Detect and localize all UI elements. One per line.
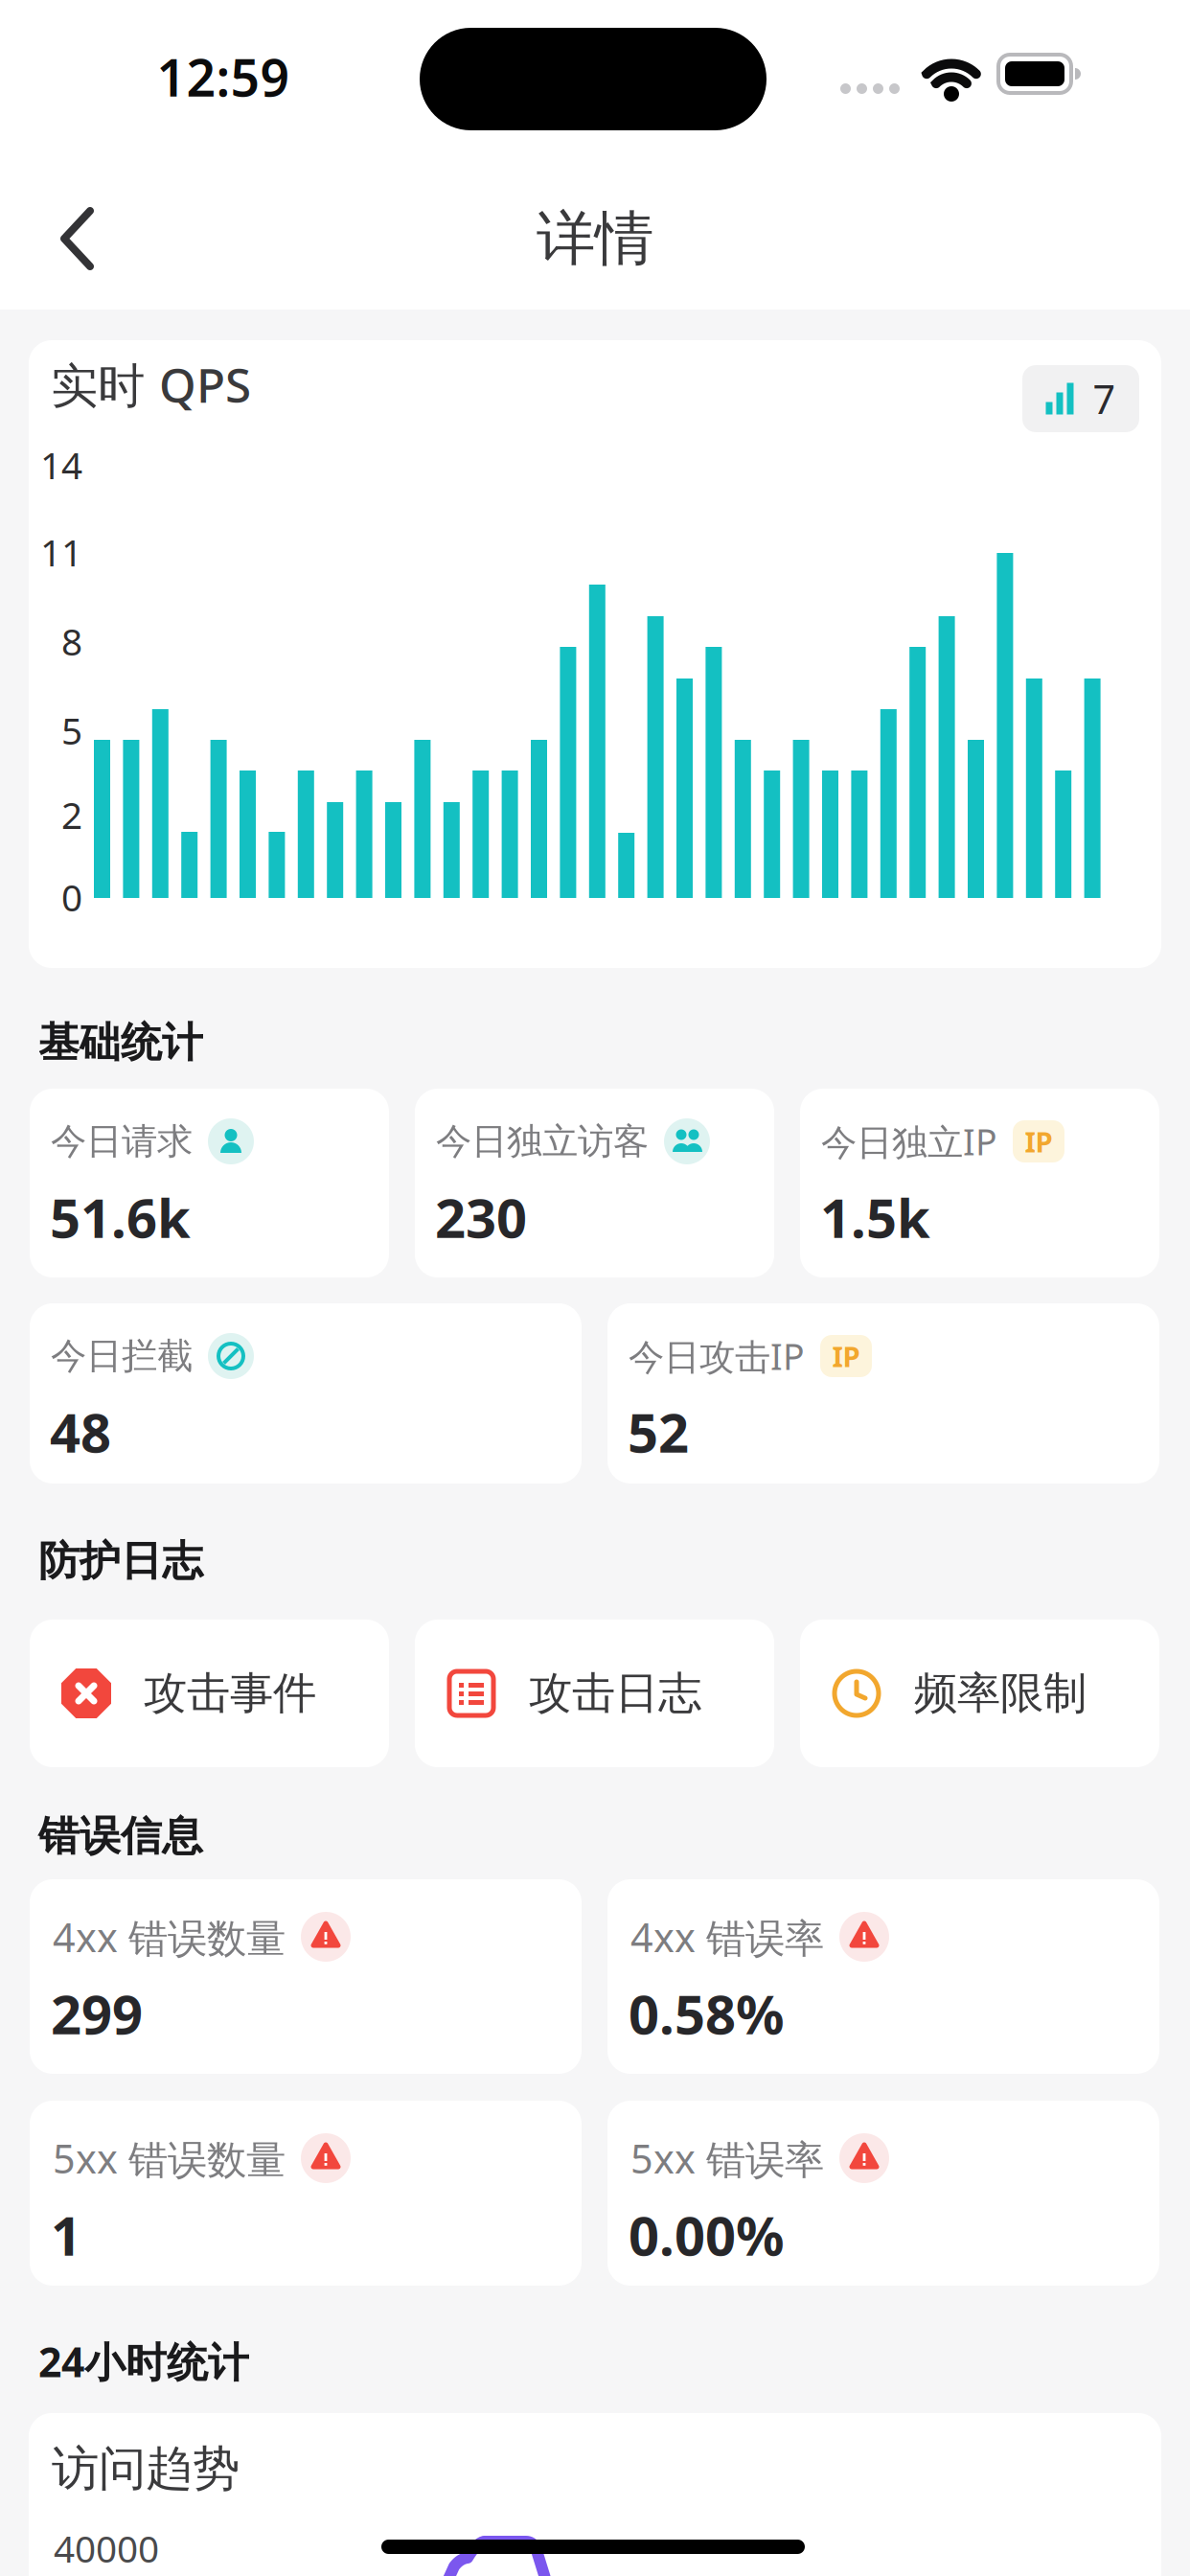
staticText: 51.6k [50,1181,191,1253]
staticText: 防护日志 [38,1536,203,1586]
staticText: 1.5k [820,1181,930,1253]
staticText: 0 [61,872,82,922]
staticText: 8 [61,616,82,666]
staticText: 0.58% [629,1978,785,2049]
staticText: 今日独立访客 [436,1119,649,1163]
staticText: 7 [1093,372,1116,425]
staticText: 2 [61,790,82,839]
staticText: 12:59 [157,43,290,111]
staticText: 今日攻击IP [629,1332,805,1380]
staticText: 攻击事件 [144,1667,316,1720]
staticText: 0.00% [629,2199,785,2270]
button[interactable]: 攻击事件 [30,1620,389,1767]
staticText: 实时 QPS [51,353,251,416]
staticText: 访问趋势 [52,2440,240,2498]
button[interactable]: 图表区间 [1022,365,1139,432]
staticText: IP [832,1337,860,1375]
staticText: 299 [51,1978,143,2049]
staticText: 4xx 错误数量 [53,1910,286,1963]
staticText: 今日独立IP [821,1118,997,1165]
staticText: 24小时统计 [38,2334,249,2389]
staticText: 52 [628,1396,689,1467]
staticText: 频率限制 [914,1667,1087,1720]
staticText: 5xx 错误率 [630,2132,824,2185]
staticText: 11 [40,527,82,577]
staticText: 今日拦截 [51,1334,193,1378]
staticText: 攻击日志 [529,1667,701,1720]
button[interactable]: 频率限制 [800,1620,1159,1767]
staticText: 14 [40,440,82,489]
staticText: 1 [51,2199,81,2270]
staticText: 详情 [537,202,653,275]
staticText: 今日请求 [51,1119,193,1163]
staticText: 基础统计 [38,1018,203,1068]
staticText: 230 [435,1181,527,1253]
button[interactable]: 攻击日志 [415,1620,774,1767]
staticText: IP [1025,1123,1053,1160]
staticText: 5xx 错误数量 [53,2132,286,2185]
button[interactable]: 返回 [61,207,100,270]
staticText: 40000 [54,2524,159,2573]
staticText: 错误信息 [38,1811,203,1861]
staticText: 5 [61,706,82,755]
staticText: 48 [50,1396,111,1467]
staticText: 4xx 错误率 [630,1910,824,1963]
